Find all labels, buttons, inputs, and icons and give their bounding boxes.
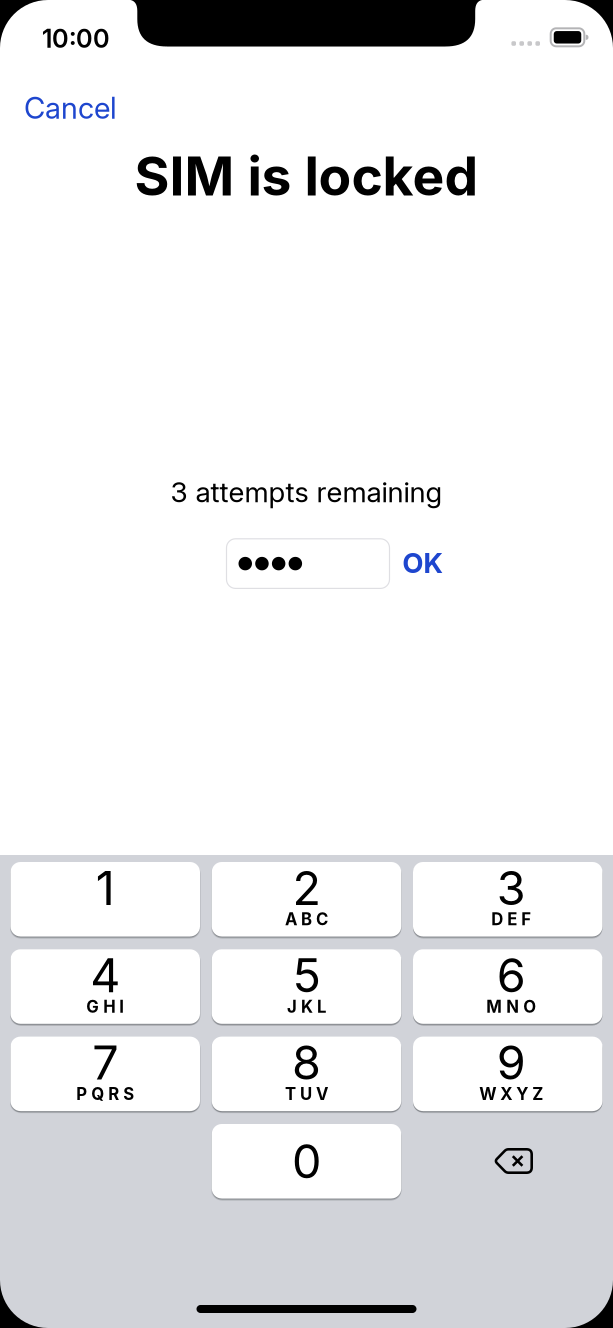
staticText: 8: [292, 1034, 321, 1091]
staticText: SIM is locked: [134, 144, 478, 208]
staticText: 6: [497, 947, 526, 1004]
staticText: 0: [292, 1133, 321, 1189]
button[interactable]: 6: [413, 949, 602, 1024]
button[interactable]: Cancel: [24, 90, 117, 126]
button[interactable]: OK: [402, 546, 442, 580]
button[interactable]: 2: [212, 862, 401, 936]
staticText: DEF: [491, 909, 531, 929]
staticText: MNO: [486, 996, 536, 1017]
button[interactable]: 9: [413, 1037, 602, 1111]
button[interactable]: Delete: [419, 1124, 609, 1198]
button[interactable]: 0: [212, 1124, 401, 1198]
staticText: 2: [292, 860, 320, 916]
staticText: PQRS: [76, 1084, 134, 1104]
staticText: GHI: [86, 996, 124, 1017]
staticText: JKL: [287, 996, 326, 1017]
button[interactable]: 3: [413, 862, 602, 936]
staticText: TUV: [285, 1084, 328, 1104]
staticText: 4: [90, 947, 120, 1004]
staticText: 7: [92, 1034, 118, 1091]
button[interactable]: 5: [212, 949, 401, 1024]
button[interactable]: 8: [212, 1037, 401, 1111]
staticText: 5: [292, 947, 320, 1004]
staticText: 1: [96, 860, 115, 916]
staticText: 3 attempts remaining: [170, 475, 442, 509]
staticText: Cancel: [24, 90, 117, 126]
staticText: 9: [497, 1034, 526, 1091]
staticText: 3: [497, 860, 526, 916]
staticText: ABC: [285, 909, 328, 929]
staticText: OK: [402, 546, 442, 580]
staticText: 10:00: [42, 23, 110, 54]
button[interactable]: 4: [10, 949, 200, 1024]
staticText: WXYZ: [479, 1084, 543, 1104]
button[interactable]: 7: [10, 1037, 200, 1111]
button[interactable]: 1: [10, 862, 200, 936]
